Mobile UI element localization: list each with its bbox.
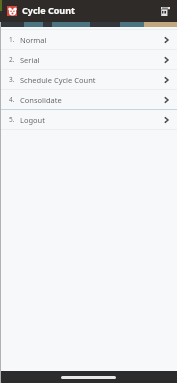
staticText: 5. [9,115,15,124]
staticText: Logout [20,115,45,125]
staticText: Consolidate [20,95,62,105]
staticText: Normal [20,35,47,45]
staticText: 2. [9,55,15,64]
staticText: 1. [9,35,15,44]
button[interactable]: 5. [0,110,177,129]
button[interactable]: Print report [157,3,173,19]
button[interactable]: 3. [0,70,177,89]
button[interactable]: 1. [0,30,177,49]
button[interactable]: 4. [0,90,177,109]
button[interactable]: 2. [0,50,177,69]
staticText: Cycle Count [22,4,75,16]
staticText: 3. [9,75,15,84]
staticText: Serial [20,55,40,65]
staticText: 4. [9,95,15,104]
staticText: Schedule Cycle Count [20,75,96,85]
